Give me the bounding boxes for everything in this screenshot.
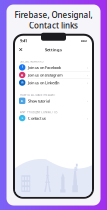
staticText: ▣ (21, 73, 24, 76)
staticText: Join us on Instagram (28, 72, 63, 78)
button[interactable]: Close (17, 46, 24, 53)
staticText: › (87, 115, 88, 121)
button[interactable]: f (15, 64, 92, 71)
staticText: Join us on LinkedIn (28, 80, 59, 85)
staticText: Show tutorial (28, 98, 50, 103)
staticText: › (87, 98, 88, 103)
button[interactable]: ▶ (15, 97, 92, 104)
staticText: f (22, 66, 23, 69)
staticText: Settings (45, 47, 62, 52)
staticText: ▶ (21, 99, 23, 102)
staticText: SOCIAL NETWORKS (20, 60, 43, 63)
staticText: Contact us (28, 115, 46, 121)
staticText: Contact links (29, 20, 78, 31)
staticText: 9:41 (20, 38, 27, 43)
staticText: › (87, 72, 88, 78)
staticText: Join us on Facebook (28, 65, 61, 70)
staticText: in (21, 81, 24, 84)
staticText: ▪▪▰ (81, 39, 87, 42)
staticText: Firebase, Onesignal, (14, 9, 92, 20)
staticText: ANY PROBLEM? CONTACT US (20, 110, 57, 114)
staticText: › (87, 65, 88, 70)
button[interactable]: in (15, 79, 92, 86)
staticText: ✕ (18, 47, 22, 53)
staticText: › (87, 80, 88, 85)
staticText: HOW TO ACTIVATE THE ALERT (20, 93, 55, 97)
staticText: ➤ (21, 117, 23, 120)
button[interactable]: ➤ (15, 114, 92, 122)
button[interactable]: ▣ (15, 71, 92, 79)
